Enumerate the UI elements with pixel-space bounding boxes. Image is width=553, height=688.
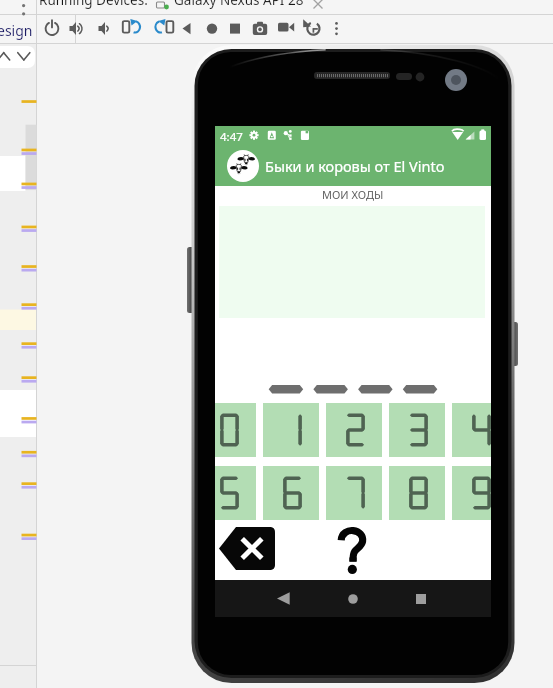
staticText: Быки и коровы от El Vinto	[265, 156, 445, 176]
button[interactable]: Running Devices:	[39, 0, 148, 9]
button[interactable]: Tool window options	[18, 0, 30, 14]
button[interactable]: Home	[199, 16, 225, 42]
button[interactable]	[215, 466, 256, 520]
button[interactable]: Volume down	[92, 16, 118, 42]
button[interactable]: Game logo	[227, 150, 259, 182]
button[interactable]: Recent apps	[398, 580, 444, 617]
button[interactable]	[452, 403, 491, 457]
button[interactable]: Help	[339, 530, 371, 578]
button[interactable]: Home	[330, 580, 376, 617]
button[interactable]	[326, 403, 382, 457]
button[interactable]: Back	[260, 580, 306, 617]
button[interactable]: Record screen	[273, 16, 299, 42]
button[interactable]: Back	[174, 16, 200, 42]
button[interactable]: Overview	[222, 16, 248, 42]
button[interactable]	[389, 466, 445, 520]
button[interactable]: esign	[0, 21, 33, 40]
staticText: 4:47	[220, 129, 243, 145]
button[interactable]	[215, 403, 256, 457]
button[interactable]: Galaxy Nexus API 28	[155, 0, 326, 9]
button[interactable]	[389, 403, 445, 457]
button[interactable]: Take screenshot	[247, 16, 273, 42]
button[interactable]: More actions	[329, 16, 344, 42]
button[interactable]: Backspace	[219, 527, 275, 570]
button[interactable]	[263, 403, 319, 457]
button[interactable]: Volume up	[63, 16, 89, 42]
button[interactable]: Reset device / history	[299, 16, 325, 42]
button[interactable]	[452, 466, 491, 520]
button[interactable]: Power	[39, 16, 65, 42]
button[interactable]	[263, 466, 319, 520]
button[interactable]: Rotate right	[149, 16, 175, 42]
staticText: МОИ ХОДЫ	[322, 187, 384, 202]
button[interactable]	[326, 466, 382, 520]
staticText: Running Devices:	[39, 0, 148, 9]
button[interactable]: Previous / next occurrence	[0, 46, 35, 68]
staticText: esign	[0, 21, 33, 40]
button[interactable]: Rotate left	[121, 16, 147, 42]
staticText: Galaxy Nexus API 28	[174, 0, 304, 9]
